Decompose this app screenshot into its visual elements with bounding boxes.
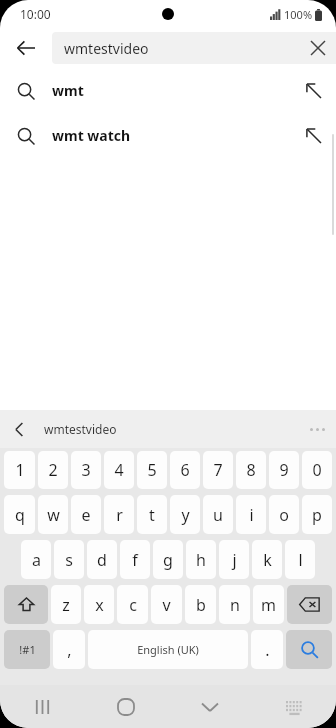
staticText: r <box>116 504 123 526</box>
button[interactable]: 1 <box>4 451 35 489</box>
staticText: o <box>279 504 289 526</box>
button[interactable]: l <box>285 540 315 579</box>
button[interactable]: wmtestvideo <box>52 32 336 64</box>
staticText: e <box>81 504 91 526</box>
staticText: 6 <box>180 459 190 481</box>
staticText: 1 <box>15 459 25 481</box>
button[interactable]: h <box>186 540 216 579</box>
staticText: 7 <box>213 459 223 481</box>
button[interactable]: Insert suggestion <box>290 68 336 113</box>
staticText: b <box>196 594 206 616</box>
staticText: 10:00 <box>20 6 51 22</box>
button[interactable]: Change keyboard <box>252 685 336 728</box>
button[interactable]: b <box>185 585 216 624</box>
staticText: g <box>163 549 173 571</box>
staticText: m <box>261 594 276 616</box>
staticText: 8 <box>246 459 256 481</box>
button[interactable]: Hide keyboard <box>168 685 252 728</box>
button[interactable]: n <box>219 585 250 624</box>
staticText: English (UK) <box>137 642 199 657</box>
button[interactable]: 2 <box>38 451 68 489</box>
staticText: d <box>97 549 107 571</box>
staticText: c <box>129 594 137 616</box>
button[interactable]: d <box>87 540 117 579</box>
button[interactable]: Insert suggestion <box>290 113 336 158</box>
staticText: i <box>249 504 254 526</box>
button[interactable]: o <box>269 495 299 534</box>
button[interactable]: s <box>54 540 84 579</box>
button[interactable]: !#1 <box>4 630 50 669</box>
button[interactable]: Clear <box>300 32 336 64</box>
staticText: wmtestvideo <box>64 39 149 58</box>
button[interactable]: u <box>203 495 233 534</box>
staticText: 4 <box>114 459 124 481</box>
staticText: l <box>298 549 303 571</box>
button[interactable]: English (UK) <box>88 630 248 669</box>
button[interactable]: m <box>253 585 284 624</box>
button[interactable]: 7 <box>203 451 233 489</box>
staticText: f <box>132 549 138 571</box>
button[interactable]: j <box>219 540 249 579</box>
staticText: 5 <box>147 459 157 481</box>
button[interactable]: 6 <box>170 451 200 489</box>
button[interactable]: t <box>137 495 167 534</box>
staticText: h <box>196 549 206 571</box>
button[interactable]: wmt watch <box>0 113 336 158</box>
button[interactable]: e <box>71 495 101 534</box>
staticText: 2 <box>48 459 58 481</box>
button[interactable]: c <box>117 585 148 624</box>
button[interactable]: x <box>84 585 114 624</box>
button[interactable]: 3 <box>71 451 101 489</box>
button[interactable]: 4 <box>104 451 134 489</box>
button[interactable]: 9 <box>269 451 299 489</box>
button[interactable]: y <box>170 495 200 534</box>
button[interactable]: Shift <box>4 585 48 624</box>
staticText: t <box>149 504 155 526</box>
staticText: 3 <box>81 459 91 481</box>
button[interactable]: 8 <box>236 451 266 489</box>
staticText: p <box>312 504 322 526</box>
button[interactable]: Previous <box>0 410 38 448</box>
staticText: . <box>265 639 270 661</box>
button[interactable]: More options <box>298 410 336 448</box>
button[interactable]: g <box>153 540 183 579</box>
staticText: v <box>162 594 171 616</box>
staticText: !#1 <box>19 642 36 657</box>
button[interactable]: wmt <box>0 68 336 113</box>
button[interactable]: z <box>51 585 81 624</box>
button[interactable]: q <box>4 495 35 534</box>
button[interactable]: r <box>104 495 134 534</box>
staticText: 100% <box>284 7 313 22</box>
button[interactable]: Search <box>286 630 332 669</box>
button[interactable]: Home <box>84 685 168 728</box>
staticText: z <box>62 594 70 616</box>
button[interactable]: k <box>252 540 282 579</box>
button[interactable]: . <box>251 630 283 669</box>
staticText: wmt watch <box>52 126 290 145</box>
staticText: n <box>230 594 240 616</box>
staticText: s <box>65 549 73 571</box>
staticText: u <box>213 504 223 526</box>
staticText: q <box>15 504 25 526</box>
button[interactable]: Recent apps <box>0 685 84 728</box>
staticText: y <box>181 504 190 526</box>
button[interactable]: w <box>38 495 68 534</box>
staticText: wmtestvideo <box>44 421 298 437</box>
button[interactable]: , <box>53 630 85 669</box>
staticText: k <box>263 549 272 571</box>
staticText: x <box>95 594 104 616</box>
button[interactable]: a <box>21 540 51 579</box>
button[interactable]: v <box>151 585 182 624</box>
button[interactable]: 5 <box>137 451 167 489</box>
staticText: 0 <box>312 459 322 481</box>
staticText: , <box>67 639 72 661</box>
button[interactable]: Backspace <box>287 585 332 624</box>
staticText: 9 <box>279 459 289 481</box>
staticText: wmt <box>52 81 290 100</box>
button[interactable]: f <box>120 540 150 579</box>
button[interactable]: i <box>236 495 266 534</box>
button[interactable]: p <box>302 495 332 534</box>
button[interactable]: 0 <box>302 451 332 489</box>
staticText: j <box>232 549 237 571</box>
button[interactable]: Back <box>0 28 52 68</box>
